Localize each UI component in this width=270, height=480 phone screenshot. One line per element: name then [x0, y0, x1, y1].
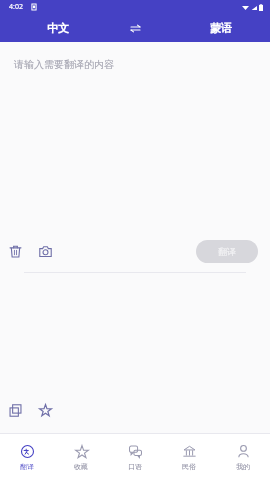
staticText: 我的 [236, 462, 250, 471]
button[interactable]: Favorite [30, 395, 60, 425]
staticText: 翻译 [218, 246, 236, 257]
button[interactable]: 翻译 [0, 434, 54, 480]
staticText: 请输入需要翻译的内容 [14, 58, 114, 71]
button[interactable]: Clear [0, 236, 30, 266]
button[interactable]: Swap languages [124, 17, 146, 39]
staticText: 收藏 [74, 462, 88, 471]
button[interactable]: 口语 [108, 434, 162, 480]
staticText: 4:02 [9, 2, 23, 12]
button[interactable]: Camera [30, 236, 60, 266]
button[interactable]: 我的 [216, 434, 270, 480]
button[interactable]: 收藏 [54, 434, 108, 480]
staticText: 翻译 [20, 462, 34, 471]
staticText: 民俗 [182, 462, 196, 471]
button[interactable]: Copy [0, 395, 30, 425]
button[interactable]: 翻译 [196, 240, 258, 263]
staticText: 口语 [128, 462, 142, 471]
button[interactable]: 蒙语 [210, 21, 232, 35]
button[interactable]: 民俗 [162, 434, 216, 480]
button[interactable]: 中文 [47, 21, 69, 35]
